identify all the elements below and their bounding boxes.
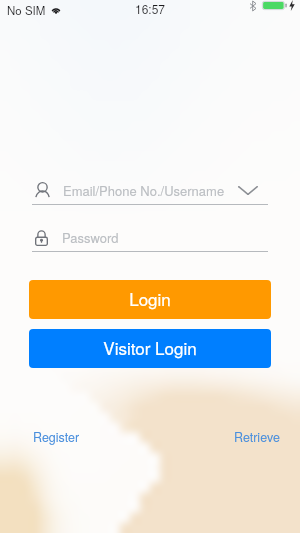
staticText: Visitor Login <box>103 335 197 359</box>
staticText: Email/Phone No./Username <box>63 181 225 200</box>
button[interactable]: Visitor Login <box>29 329 271 368</box>
staticText: Login <box>129 286 171 310</box>
staticText: Password <box>62 228 119 247</box>
button[interactable]: Retrieve <box>234 428 280 446</box>
button[interactable]: Email/Phone No./Username <box>0 181 300 207</box>
other: Choose saved account <box>238 186 258 195</box>
staticText: 16:57 <box>135 0 166 17</box>
staticText: No SIM <box>7 2 46 18</box>
button[interactable]: Password <box>0 228 300 254</box>
button[interactable]: Register <box>33 428 80 446</box>
button[interactable]: Login <box>29 280 271 319</box>
